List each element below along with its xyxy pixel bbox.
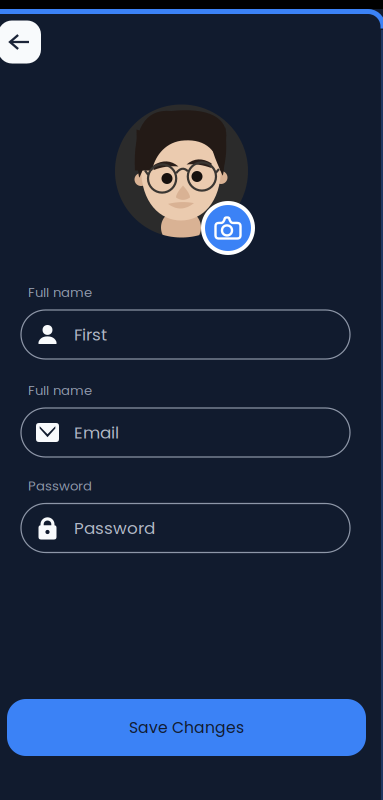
staticText: Password	[28, 477, 92, 495]
staticText: Full name	[28, 381, 92, 400]
staticText: Password	[74, 516, 155, 540]
staticText: Full name	[28, 283, 92, 302]
staticText: Save Changes	[129, 717, 244, 738]
staticText: Email	[74, 421, 119, 444]
button[interactable]: Change profile photo	[201, 201, 255, 255]
staticText: First	[74, 323, 107, 346]
button[interactable]: Back	[0, 20, 41, 63]
button[interactable]: Save Changes	[7, 699, 366, 756]
